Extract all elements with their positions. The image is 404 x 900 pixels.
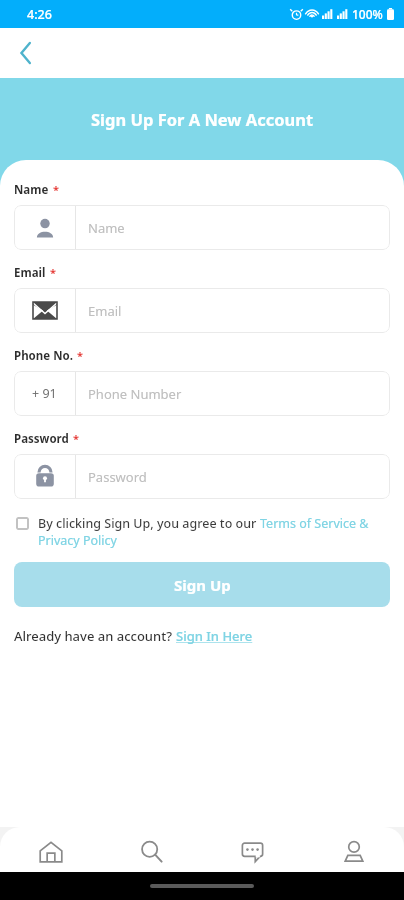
button[interactable]: + 91 bbox=[14, 371, 390, 416]
staticText: Already have an account? bbox=[14, 627, 176, 645]
staticText: + 91 bbox=[32, 385, 57, 402]
staticText: * bbox=[53, 182, 59, 197]
staticText: Terms of Service & bbox=[260, 515, 369, 532]
staticText: * bbox=[73, 431, 79, 446]
button[interactable]: Back bbox=[8, 35, 44, 71]
staticText: Email bbox=[14, 265, 46, 281]
button[interactable]: Password bbox=[14, 454, 390, 499]
button[interactable]: Profile bbox=[303, 831, 404, 872]
staticText: Sign In Here bbox=[176, 627, 253, 645]
button[interactable]: Name bbox=[14, 205, 390, 250]
button[interactable]: Messages bbox=[202, 831, 303, 872]
button[interactable]: By clicking Sign Up, you agree to our bbox=[14, 515, 390, 549]
button[interactable]: Search bbox=[101, 831, 202, 872]
staticText: Sign Up For A New Account bbox=[91, 108, 314, 130]
staticText: Phone Number bbox=[88, 385, 182, 403]
staticText: Phone No. bbox=[14, 348, 73, 364]
button[interactable]: Sign In Here bbox=[176, 627, 253, 645]
staticText: * bbox=[50, 265, 56, 280]
button[interactable]: Home bbox=[0, 831, 101, 872]
button[interactable]: Email bbox=[14, 288, 390, 333]
staticText: By clicking Sign Up, you agree to our bbox=[38, 515, 260, 532]
staticText: Name bbox=[14, 182, 49, 198]
staticText: * bbox=[77, 348, 83, 363]
staticText: Email bbox=[88, 302, 122, 320]
staticText: Password bbox=[88, 468, 147, 486]
staticText: Sign Up bbox=[174, 575, 231, 595]
staticText: 4:26 bbox=[27, 6, 52, 23]
staticText: Name bbox=[88, 219, 125, 237]
staticText: Privacy Policy bbox=[38, 532, 117, 549]
button[interactable]: Sign Up bbox=[14, 562, 390, 607]
staticText: 100% bbox=[352, 6, 383, 22]
staticText: Password bbox=[14, 431, 69, 447]
